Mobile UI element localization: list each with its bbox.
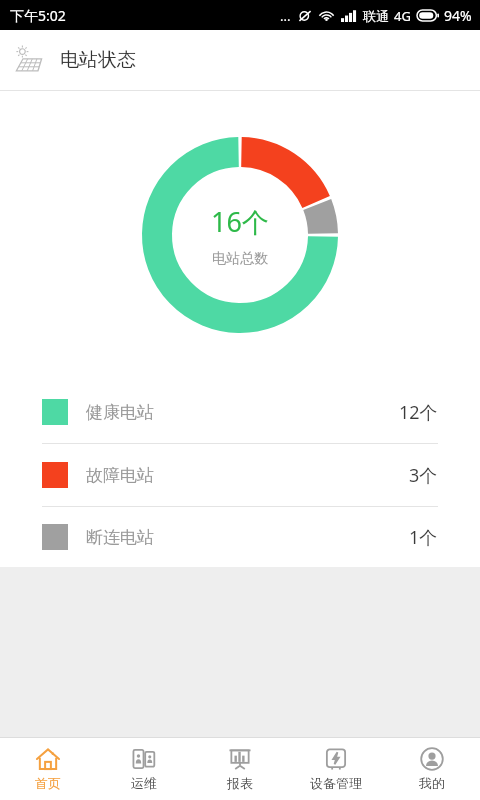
button[interactable]: 设备管理 bbox=[288, 738, 384, 800]
staticText: 运维 bbox=[131, 775, 157, 791]
staticText: 首页 bbox=[35, 775, 61, 791]
staticText: 电站总数 bbox=[212, 250, 268, 268]
staticText: 报表 bbox=[227, 775, 253, 791]
button[interactable]: 首页 bbox=[0, 738, 96, 800]
staticText: 联通 bbox=[363, 8, 389, 24]
button[interactable]: 我的 bbox=[384, 738, 480, 800]
staticText: 下午5:02 bbox=[10, 6, 66, 25]
button[interactable]: 断连电站 bbox=[0, 507, 480, 567]
staticText: 12个 bbox=[399, 400, 438, 425]
staticText: 94% bbox=[444, 6, 472, 25]
staticText: 16个 bbox=[211, 203, 269, 240]
staticText: 我的 bbox=[419, 775, 445, 791]
staticText: 断连电站 bbox=[86, 527, 154, 548]
staticText: ... bbox=[280, 7, 291, 25]
button[interactable]: 报表 bbox=[192, 738, 288, 800]
staticText: 3个 bbox=[409, 463, 438, 488]
staticText: 健康电站 bbox=[86, 402, 154, 423]
staticText: 故障电站 bbox=[86, 465, 154, 486]
staticText: 4G bbox=[394, 7, 411, 25]
button[interactable]: 运维 bbox=[96, 738, 192, 800]
staticText: 电站状态 bbox=[60, 48, 136, 72]
button[interactable]: 健康电站 bbox=[0, 381, 480, 443]
staticText: 1个 bbox=[409, 525, 438, 550]
staticText: 设备管理 bbox=[310, 775, 362, 791]
button[interactable]: 故障电站 bbox=[0, 444, 480, 506]
